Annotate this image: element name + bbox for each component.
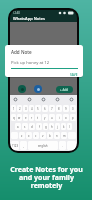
button[interactable]: t [35, 114, 41, 121]
staticText: Create Notes for you and your family rem… [10, 165, 83, 190]
button[interactable]: 3 [23, 105, 28, 112]
button[interactable]: 2 [17, 105, 22, 112]
button[interactable]: k [61, 123, 66, 130]
staticText: a [17, 125, 19, 129]
button[interactable]: + Add [56, 86, 73, 93]
button[interactable]: a [15, 123, 21, 130]
staticText: u [51, 116, 53, 120]
button[interactable]: s [22, 123, 28, 130]
staticText: w [18, 116, 21, 120]
staticText: 1 [13, 107, 15, 111]
button[interactable]: Voice note [18, 85, 26, 93]
button[interactable]: i [56, 114, 62, 121]
staticText: 0 [72, 107, 74, 111]
button[interactable]: 7 [49, 105, 55, 112]
button[interactable]: o [63, 114, 69, 121]
staticText: t [37, 116, 39, 120]
staticText: Add Note [11, 49, 32, 55]
button[interactable]: Attach [34, 85, 42, 93]
staticText: r [31, 116, 33, 120]
staticText: z [21, 134, 23, 138]
button[interactable]: y [42, 114, 48, 121]
button[interactable]: p [70, 114, 76, 121]
staticText: 9 [65, 107, 67, 111]
button[interactable]: english [28, 141, 58, 150]
staticText: i [59, 116, 60, 120]
button[interactable]: , [20, 141, 27, 150]
button[interactable]: w [17, 114, 22, 121]
staticText: y [44, 116, 46, 120]
staticText: 8 [58, 107, 60, 111]
button[interactable]: ?123 [11, 141, 19, 150]
staticText: h [51, 125, 53, 129]
button[interactable]: z [19, 132, 25, 139]
staticText: 3 [25, 107, 27, 111]
button[interactable]: 0 [70, 105, 76, 112]
button[interactable]: 4 [29, 105, 34, 112]
button[interactable]: e [23, 114, 28, 121]
button[interactable]: 1 [11, 105, 16, 112]
staticText: d [31, 125, 33, 129]
staticText: v [42, 134, 44, 138]
staticText: b [49, 134, 51, 138]
staticText: english [38, 144, 48, 148]
staticText: 12:40 [13, 11, 20, 15]
button[interactable] [67, 141, 76, 150]
staticText: p [72, 116, 74, 120]
button[interactable] [14, 98, 17, 101]
button[interactable]: 5 [35, 105, 41, 112]
staticText: 6 [44, 107, 46, 111]
button[interactable]: m [61, 132, 67, 139]
staticText: s [24, 125, 26, 129]
staticText: SAVE [70, 73, 78, 77]
button[interactable]: b [47, 132, 53, 139]
staticText: + Add [60, 88, 69, 92]
button[interactable]: d [29, 123, 35, 130]
button[interactable]: u [49, 114, 55, 121]
staticText: 7 [51, 107, 53, 111]
staticText: j [57, 125, 58, 129]
button[interactable]: l [67, 123, 72, 130]
button[interactable]: 9 [63, 105, 69, 112]
button[interactable] [70, 98, 73, 101]
button[interactable]: SAVE [70, 73, 78, 77]
staticText: c [35, 134, 37, 138]
staticText: e [25, 116, 27, 120]
button[interactable]: h [49, 123, 54, 130]
staticText: 2 [19, 107, 21, 111]
button[interactable] [56, 98, 59, 101]
button[interactable]: 8 [56, 105, 62, 112]
staticText: 5 [37, 107, 39, 111]
button[interactable]: r [29, 114, 34, 121]
staticText: l [69, 125, 70, 129]
staticText: m [63, 134, 66, 138]
staticText: o [65, 116, 67, 120]
staticText: x [28, 134, 30, 138]
button[interactable] [28, 98, 31, 101]
staticText: g [45, 125, 47, 129]
staticText: , [23, 144, 24, 148]
button[interactable]: x [26, 132, 32, 139]
staticText: WhatsApp Notes [13, 16, 45, 21]
button[interactable]: f [36, 123, 42, 130]
staticText: ?123 [12, 144, 19, 148]
staticText: 4 [31, 107, 33, 111]
button[interactable]: n [54, 132, 60, 139]
button[interactable]: 6 [42, 105, 48, 112]
button[interactable]: g [43, 123, 48, 130]
staticText: n [56, 134, 58, 138]
staticText: q [13, 116, 15, 120]
button[interactable] [42, 98, 45, 101]
button[interactable]: c [33, 132, 39, 139]
button[interactable]: v [40, 132, 46, 139]
staticText: f [39, 125, 40, 129]
button[interactable]: q [11, 114, 16, 121]
button[interactable]: j [55, 123, 60, 130]
staticText: Pick up honey at 12 [11, 60, 50, 66]
staticText: k [63, 125, 65, 129]
staticText: . [62, 144, 63, 148]
